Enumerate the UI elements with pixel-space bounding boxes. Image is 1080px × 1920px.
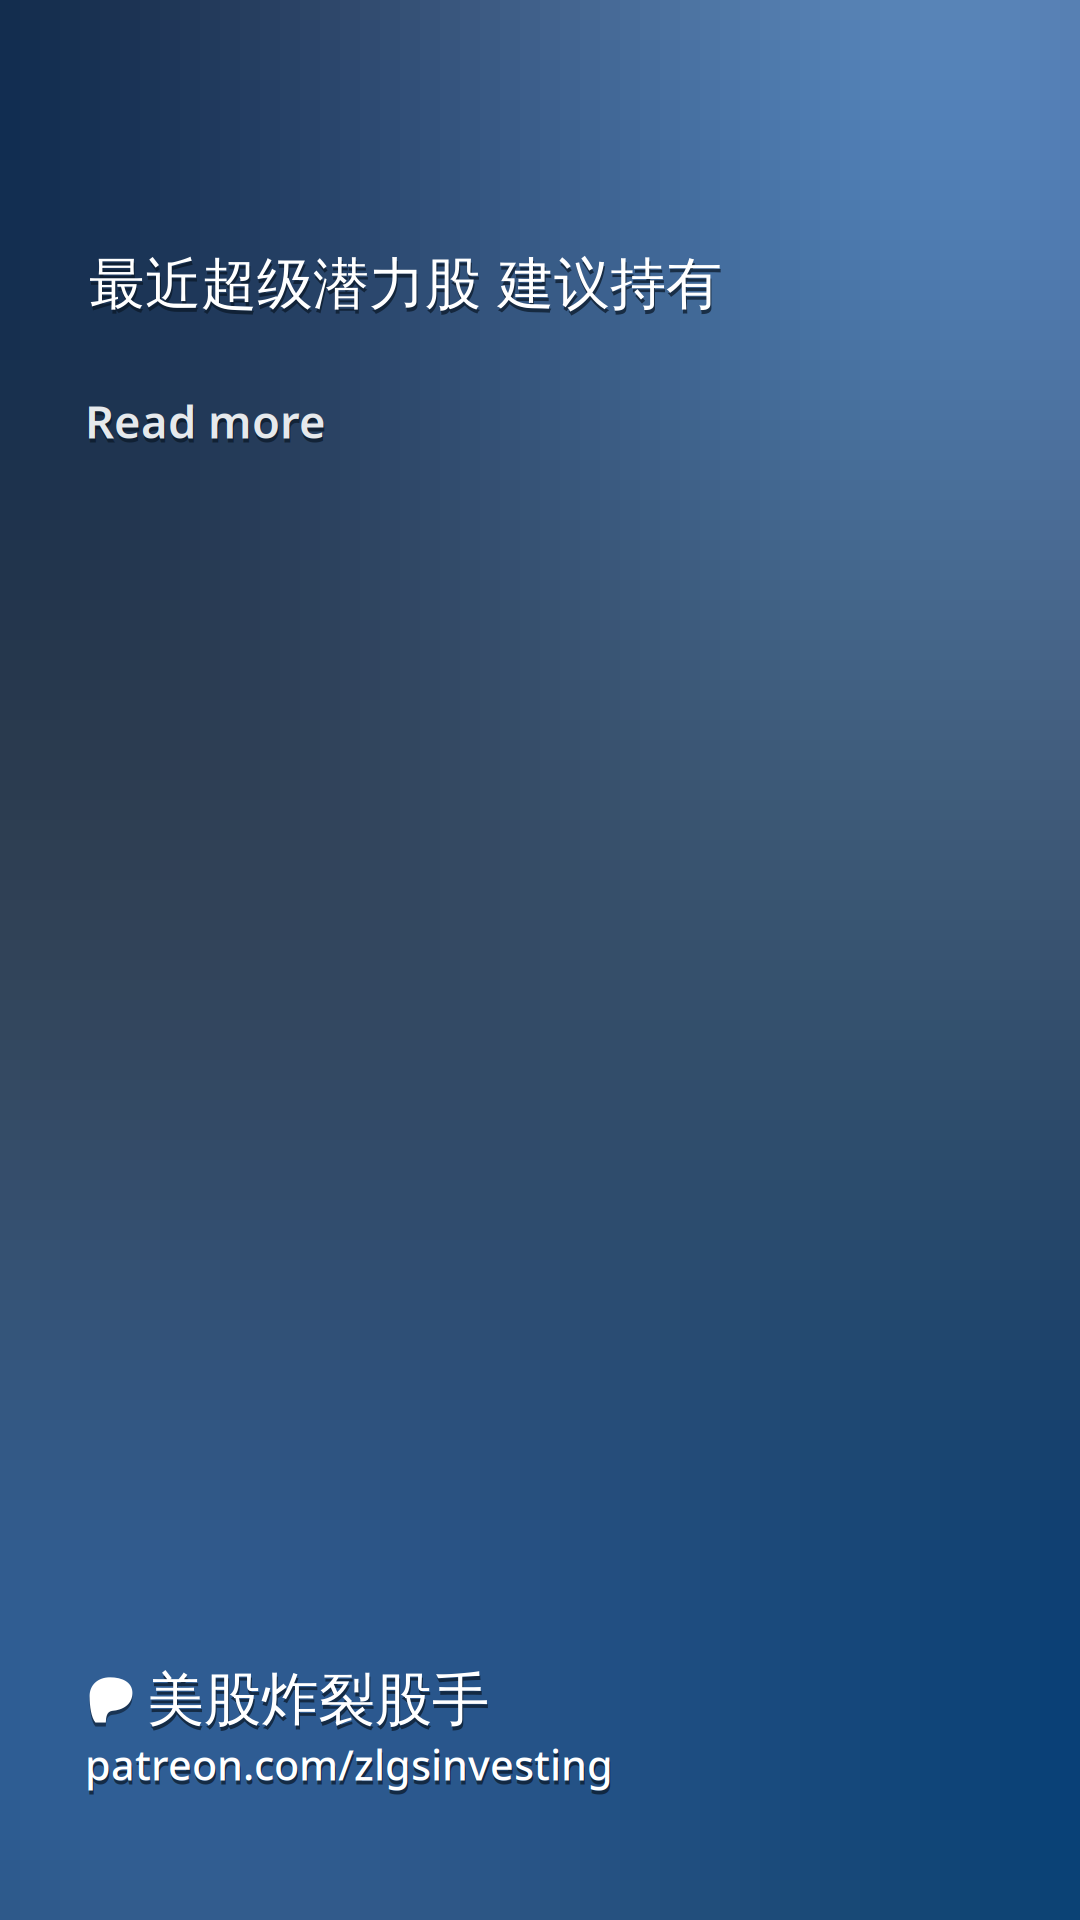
staticText: 最近超级潜力股 建议持有 <box>90 254 723 323</box>
button[interactable]: patreon.com/zlgsinvesting <box>89 1737 617 1792</box>
staticText: patreon.com/zlgsinvesting <box>85 1737 613 1792</box>
button[interactable]: Read more <box>89 391 330 451</box>
button[interactable]: 美股炸裂股手 <box>89 1665 489 1735</box>
staticText: patreon.com/zlgsinvesting <box>86 1741 614 1796</box>
staticText: Read more <box>85 391 326 451</box>
staticText: 最近超级潜力股 建议持有 <box>89 250 722 319</box>
staticText: Read more <box>86 395 327 455</box>
staticText: 美股炸裂股手 <box>148 1669 490 1739</box>
staticText: 美股炸裂股手 <box>147 1665 489 1735</box>
